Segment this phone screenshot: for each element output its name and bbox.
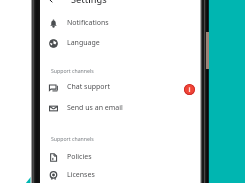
button[interactable]: Language (40, 33, 200, 53)
button[interactable]: Licenses (40, 165, 200, 183)
button[interactable]: Chat support (40, 77, 200, 97)
staticText: Support channels (51, 67, 94, 74)
staticText: Send us an email (67, 103, 123, 113)
staticText: Chat support (67, 82, 110, 92)
button[interactable]: Send us an email (40, 98, 200, 118)
button[interactable]: Policies (40, 147, 200, 167)
button[interactable]: Back (45, 0, 60, 7)
staticText: Licenses (67, 170, 95, 180)
staticText: Settings (71, 0, 107, 6)
staticText: Notifications (67, 18, 109, 28)
button[interactable]: Notifications (40, 13, 200, 33)
button[interactable]: 1 unread chat message (184, 84, 195, 95)
staticText: Policies (67, 152, 92, 162)
staticText: Language (67, 38, 100, 48)
staticText: Support channels (51, 135, 94, 142)
